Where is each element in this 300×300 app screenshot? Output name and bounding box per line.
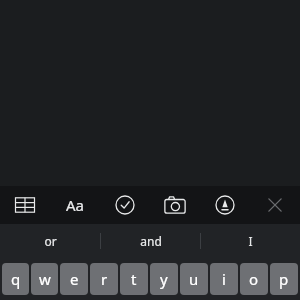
button[interactable]: t: [120, 263, 148, 295]
staticText: y: [160, 269, 168, 289]
staticText: t: [131, 269, 137, 289]
button[interactable]: Close keyboard: [250, 186, 300, 224]
staticText: p: [279, 269, 289, 289]
staticText: Aa: [66, 195, 85, 215]
button[interactable]: i: [210, 263, 238, 295]
button[interactable]: or: [0, 224, 100, 258]
button[interactable]: Insert table: [0, 186, 50, 224]
staticText: e: [70, 269, 79, 289]
button[interactable]: y: [150, 263, 178, 295]
staticText: w: [39, 269, 51, 289]
staticText: u: [189, 269, 199, 289]
button[interactable]: Checklist: [100, 186, 150, 224]
button[interactable]: Text formatting: [50, 186, 100, 224]
staticText: q: [11, 269, 21, 289]
button[interactable]: u: [180, 263, 208, 295]
staticText: I: [248, 233, 253, 249]
staticText: o: [249, 269, 259, 289]
staticText: and: [140, 233, 162, 249]
button[interactable]: e: [60, 263, 88, 295]
staticText: i: [222, 269, 226, 289]
button[interactable]: o: [240, 263, 268, 295]
button[interactable]: w: [31, 263, 58, 295]
button[interactable]: Camera: [150, 186, 200, 224]
button[interactable]: and: [101, 224, 200, 258]
staticText: r: [101, 269, 108, 289]
button[interactable]: q: [2, 263, 29, 295]
staticText: or: [44, 233, 57, 249]
button[interactable]: p: [270, 263, 298, 295]
button[interactable]: r: [90, 263, 118, 295]
button[interactable]: I: [201, 224, 300, 258]
button[interactable]: Markup: [200, 186, 250, 224]
